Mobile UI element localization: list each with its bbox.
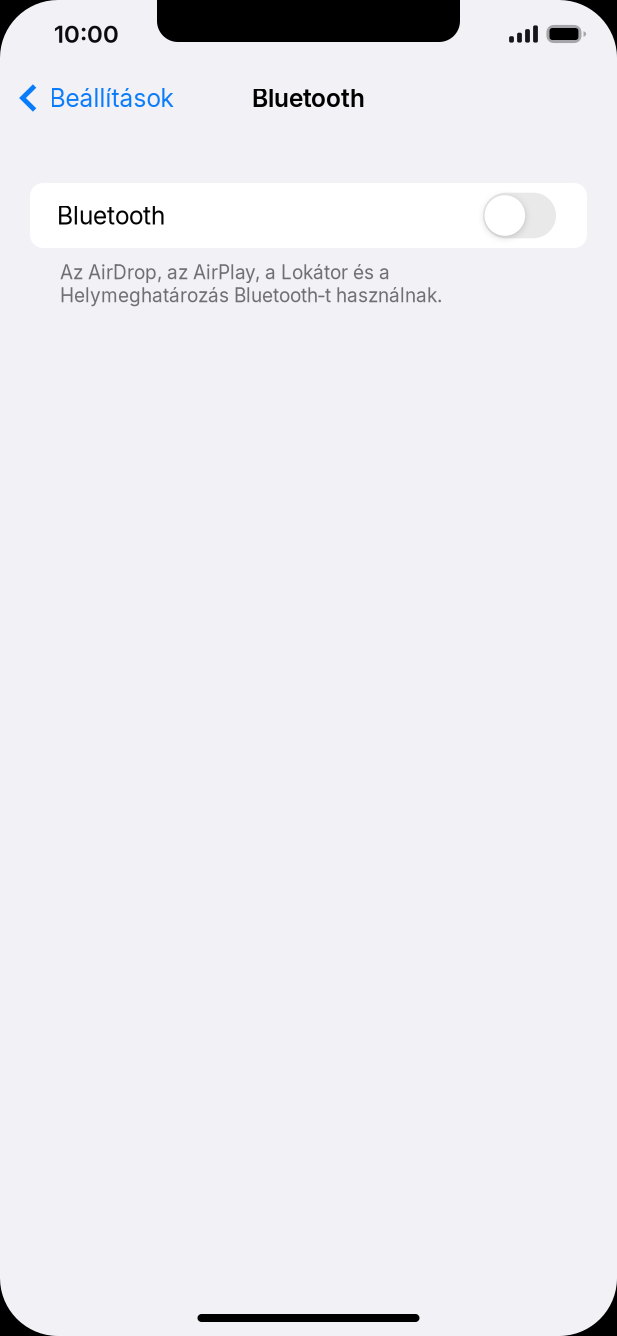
staticText: Bluetooth: [252, 83, 365, 113]
staticText: Az AirDrop, az AirPlay, a Lokátor és a H…: [60, 261, 442, 307]
staticText: Beállítások: [50, 83, 174, 113]
staticText: Bluetooth: [57, 201, 165, 230]
button[interactable]: Beállítások: [0, 68, 186, 128]
staticText: 10:00: [54, 19, 119, 48]
button[interactable]: Bluetooth: [483, 193, 556, 238]
